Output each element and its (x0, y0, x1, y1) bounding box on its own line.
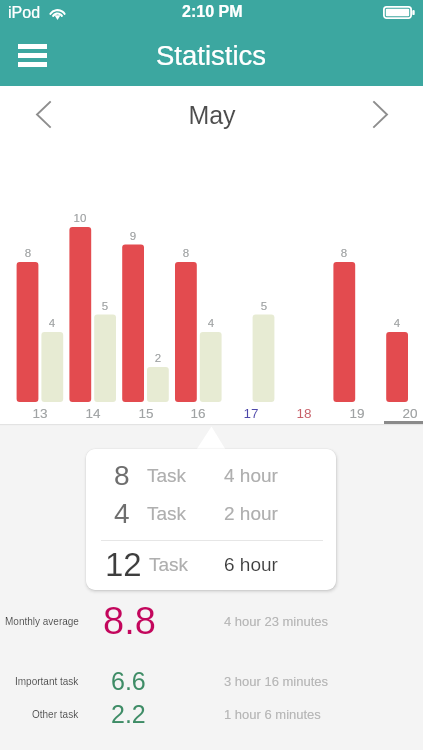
staticText: May (188, 101, 236, 129)
staticText: 8 (319, 247, 369, 260)
staticText: 2 (133, 352, 183, 365)
staticText: Task (149, 554, 189, 575)
button[interactable]: Other task (0, 692, 423, 736)
staticText: 18 (279, 406, 329, 421)
staticText: Monthly average (5, 616, 79, 627)
staticText: 9 (108, 230, 158, 243)
button[interactable]: 8 (86, 449, 336, 590)
staticText: 4 hour 23 minutes (224, 614, 329, 629)
staticText: Important task (15, 676, 79, 687)
staticText: 4 (372, 317, 422, 330)
staticText: Statistics (156, 40, 267, 71)
staticText: 19 (332, 406, 382, 421)
staticText: 10 (55, 212, 105, 225)
staticText: 4 hour (224, 465, 278, 486)
button[interactable]: Next month (351, 86, 409, 143)
staticText: 4 (27, 317, 77, 330)
staticText: Other task (32, 709, 79, 720)
staticText: 8 (161, 247, 211, 260)
staticText: 5 (239, 300, 289, 313)
staticText: 4 (114, 498, 130, 529)
staticText: 4 (186, 317, 236, 330)
button[interactable]: Important task (0, 659, 423, 703)
staticText: 8.8 (103, 600, 156, 642)
staticText: 5 (80, 300, 130, 313)
staticText: 6.6 (111, 667, 146, 695)
staticText: 20 (385, 406, 423, 421)
staticText: 8 (114, 460, 130, 491)
staticText: 1 hour 6 minutes (224, 707, 321, 722)
staticText: 8 (3, 247, 53, 260)
staticText: 17 (226, 406, 276, 421)
staticText: 15 (121, 406, 171, 421)
button[interactable]: Previous month (14, 86, 72, 143)
staticText: iPod (8, 4, 41, 22)
staticText: 3 hour 16 minutes (224, 674, 329, 689)
staticText: 2.2 (111, 700, 146, 728)
staticText: 2 hour (224, 503, 278, 524)
button[interactable]: Monthly average (0, 599, 423, 643)
staticText: 13 (15, 406, 65, 421)
staticText: 14 (68, 406, 118, 421)
staticText: 12 (105, 546, 142, 582)
staticText: 2:10 PM (182, 3, 243, 21)
staticText: 16 (173, 406, 223, 421)
staticText: 6 hour (224, 554, 278, 575)
staticText: Task (147, 465, 187, 486)
staticText: Task (147, 503, 187, 524)
button[interactable]: Menu (6, 29, 58, 81)
